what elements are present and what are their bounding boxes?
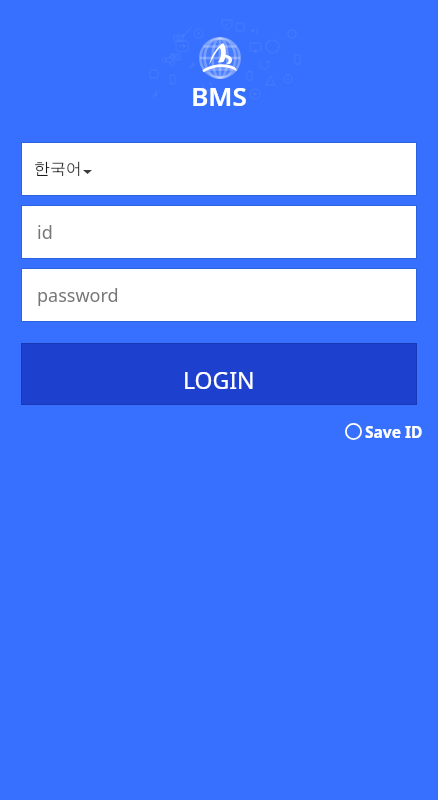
- other: Save ID toggle: [345, 423, 362, 440]
- staticText: LOGIN: [183, 364, 255, 395]
- staticText: BMS: [0, 78, 438, 113]
- button[interactable]: LOGIN: [21, 343, 417, 405]
- staticText: Save ID: [365, 421, 423, 442]
- staticText: password: [37, 283, 119, 308]
- button[interactable]: Save ID toggle: [345, 420, 423, 442]
- button[interactable]: password: [21, 268, 417, 322]
- staticText: 한국어: [34, 159, 82, 179]
- staticText: id: [37, 220, 53, 245]
- button[interactable]: id: [21, 205, 417, 259]
- button[interactable]: 한국어: [21, 142, 417, 196]
